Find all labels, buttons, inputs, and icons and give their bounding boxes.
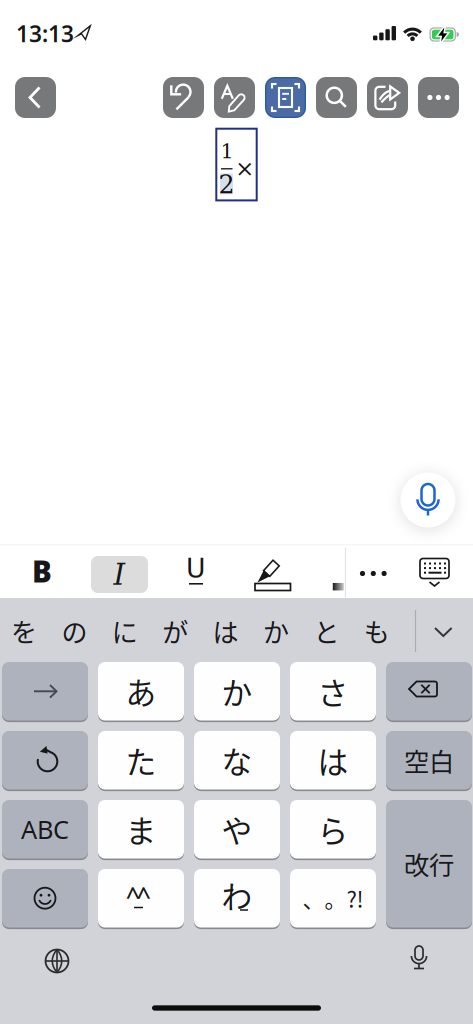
button[interactable]: か <box>194 661 280 721</box>
staticText: さ <box>317 669 348 713</box>
button[interactable]: Delete <box>386 661 472 721</box>
button[interactable]: を <box>2 608 46 654</box>
button[interactable]: が <box>153 608 197 654</box>
button[interactable]: Italic <box>91 556 148 593</box>
staticText: ABC <box>21 812 69 846</box>
button[interactable]: Dictation <box>401 938 437 982</box>
button[interactable]: Search <box>316 77 357 118</box>
button[interactable]: Highlight <box>248 548 296 596</box>
staticText: ら <box>317 807 348 851</box>
button[interactable]: Punctuation <box>290 868 376 928</box>
button[interactable]: Bold <box>20 549 64 593</box>
staticText: の <box>61 612 87 650</box>
staticText: I <box>113 557 125 591</box>
staticText: 1 <box>220 139 233 163</box>
button[interactable]: Cursor right <box>2 661 88 721</box>
button[interactable]: Undo <box>163 77 204 118</box>
button[interactable]: あ <box>98 661 184 721</box>
button[interactable]: Next keyboard <box>35 939 79 983</box>
staticText: ま <box>125 807 156 851</box>
button[interactable]: は <box>204 608 248 654</box>
staticText: や <box>221 807 252 851</box>
button[interactable]: さ <box>290 661 376 721</box>
button[interactable]: Format text <box>214 77 255 118</box>
staticText: が <box>162 612 188 650</box>
staticText: ^ <box>137 879 151 913</box>
staticText: ^ <box>126 879 140 913</box>
staticText: B <box>32 551 52 591</box>
staticText: と <box>313 612 339 650</box>
button[interactable]: た <box>98 730 184 790</box>
button[interactable]: か <box>254 608 298 654</box>
button[interactable]: Mobile view <box>265 77 306 118</box>
staticText: は <box>317 738 348 782</box>
staticText: は <box>213 612 239 650</box>
button[interactable]: Share <box>367 77 408 118</box>
staticText: た <box>125 738 156 782</box>
button[interactable]: More <box>418 77 459 118</box>
button[interactable]: Space <box>386 730 472 790</box>
staticText: か <box>263 612 289 650</box>
button[interactable]: な <box>194 730 280 790</box>
staticText: か <box>221 669 252 713</box>
staticText: 空白 <box>404 742 454 779</box>
button[interactable]: や <box>194 799 280 859</box>
button[interactable]: ま <box>98 799 184 859</box>
button[interactable]: ら <box>290 799 376 859</box>
button[interactable]: Switch to ABC <box>2 799 88 859</box>
staticText: 13:13 <box>16 18 74 48</box>
button[interactable]: Underline <box>174 550 218 594</box>
button[interactable]: わ <box>194 868 280 928</box>
button[interactable]: の <box>52 608 96 654</box>
staticText: 、。?! <box>302 882 363 914</box>
button[interactable]: Undo <box>2 730 88 790</box>
button[interactable]: は <box>290 730 376 790</box>
staticText: 改行 <box>404 845 454 882</box>
button[interactable]: に <box>103 608 147 654</box>
staticText: あ <box>125 669 156 713</box>
button[interactable]: More formatting <box>353 551 393 595</box>
button[interactable]: Emoji <box>2 868 88 928</box>
button[interactable]: も <box>355 608 399 654</box>
button[interactable]: Hide keyboard <box>412 554 456 594</box>
staticText: を <box>11 612 37 650</box>
button[interactable]: Return <box>386 799 472 928</box>
staticText: な <box>221 738 252 782</box>
button[interactable]: Kaomoji <box>98 868 184 928</box>
staticText: 2 <box>218 170 234 199</box>
button[interactable]: Back <box>15 77 56 118</box>
staticText: × <box>235 155 254 182</box>
button[interactable]: Collapse suggestions <box>428 619 459 644</box>
button[interactable]: Dictate <box>400 472 455 527</box>
staticText: U <box>186 553 206 584</box>
staticText: も <box>364 612 390 650</box>
staticText: に <box>112 612 138 650</box>
button[interactable]: と <box>304 608 348 654</box>
staticText: わ <box>221 873 252 917</box>
